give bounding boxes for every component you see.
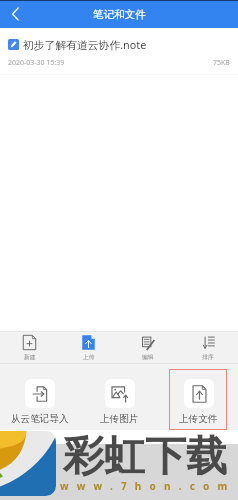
button[interactable]: 编辑 xyxy=(118,332,178,363)
staticText: 笔记和文件 xyxy=(93,8,146,21)
button[interactable]: 上传文件 xyxy=(159,364,238,430)
staticText: www.7hon.com xyxy=(60,479,236,493)
staticText: 新建 xyxy=(24,353,36,360)
staticText: 上传 xyxy=(83,353,95,360)
button[interactable]: 新建 xyxy=(0,332,59,363)
staticText: 排序 xyxy=(202,353,214,360)
button[interactable]: 初步了解有道云协作.note xyxy=(0,28,238,75)
staticText: 彩虹下载 xyxy=(63,431,227,483)
button[interactable]: Back xyxy=(0,0,30,28)
staticText: 75KB xyxy=(213,58,230,68)
button[interactable]: 上传图片 xyxy=(80,364,159,430)
staticText: 编辑 xyxy=(142,353,154,360)
staticText: 上传文件 xyxy=(179,413,218,425)
staticText: 从云笔记导入 xyxy=(11,413,69,425)
staticText: 上传图片 xyxy=(100,413,139,425)
button[interactable]: 从云笔记导入 xyxy=(0,364,80,430)
staticText: 初步了解有道云协作.note xyxy=(23,37,147,52)
staticText: 2020-03-30 15:39 xyxy=(8,58,65,68)
button[interactable]: 排序 xyxy=(178,332,238,363)
button[interactable]: 上传 xyxy=(59,332,118,363)
